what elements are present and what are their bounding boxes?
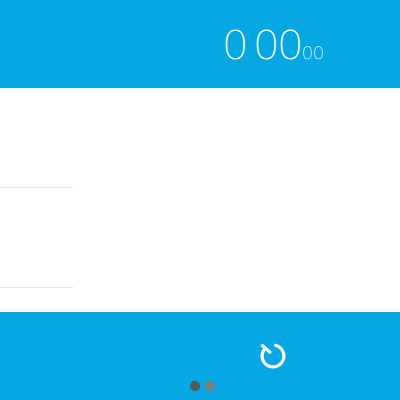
staticText: 0 [223,15,247,71]
staticText: 00 [302,39,324,64]
button[interactable]: Reset [256,339,290,373]
staticText: 00 [254,15,302,71]
